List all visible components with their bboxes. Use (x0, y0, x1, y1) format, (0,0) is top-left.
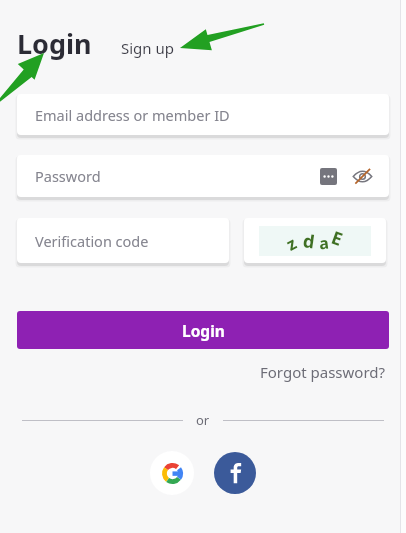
staticText: Forgot password? (260, 362, 386, 382)
button[interactable]: Sign in with Google (150, 451, 194, 495)
button[interactable]: Toggle password visibility (351, 165, 373, 187)
button[interactable]: Captcha image, tap to refresh (244, 218, 386, 263)
staticText: Login (17, 25, 92, 62)
staticText: z (282, 231, 301, 256)
button[interactable]: Forgot password? (260, 360, 406, 384)
staticText: E (328, 225, 347, 252)
staticText: d (301, 228, 317, 255)
button[interactable]: Password keyboard (320, 168, 337, 185)
staticText: a (318, 231, 330, 254)
staticText: Verification code (35, 231, 149, 251)
button[interactable]: Sign in with Facebook (214, 452, 256, 494)
button[interactable]: Sign up (121, 38, 174, 62)
staticText: Password (35, 166, 101, 186)
button[interactable]: Login (17, 25, 92, 62)
staticText: Login (182, 320, 225, 341)
button[interactable]: Login (17, 311, 389, 349)
button[interactable]: Password (17, 155, 389, 197)
staticText: Sign up (121, 38, 174, 58)
button[interactable]: Verification code (17, 218, 229, 263)
staticText: or (196, 411, 210, 429)
staticText: Email address or member ID (35, 105, 230, 125)
button[interactable]: Email address or member ID (17, 94, 389, 135)
